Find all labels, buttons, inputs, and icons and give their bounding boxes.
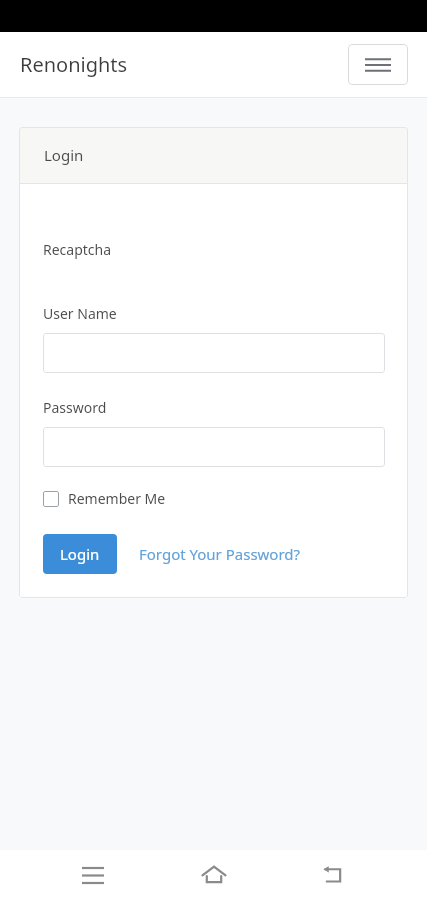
staticText: User Name xyxy=(43,304,117,323)
button[interactable] xyxy=(43,333,385,373)
button[interactable]: Open navigation menu xyxy=(348,44,408,85)
button[interactable]: Forgot Your Password? xyxy=(137,538,303,570)
button[interactable]: Back xyxy=(306,850,362,900)
staticText: Remember Me xyxy=(68,489,166,508)
staticText: Forgot Your Password? xyxy=(139,544,301,564)
button[interactable]: Recent apps xyxy=(65,850,121,900)
button[interactable]: Remember Me xyxy=(43,489,166,508)
staticText: Renonights xyxy=(20,51,128,78)
button[interactable] xyxy=(43,427,385,467)
staticText: Password xyxy=(43,398,107,417)
button[interactable]: Home xyxy=(186,850,242,900)
button[interactable]: Login xyxy=(43,534,117,574)
staticText: Login xyxy=(60,544,100,564)
staticText: Recaptcha xyxy=(43,240,112,259)
staticText: Login xyxy=(44,145,84,165)
